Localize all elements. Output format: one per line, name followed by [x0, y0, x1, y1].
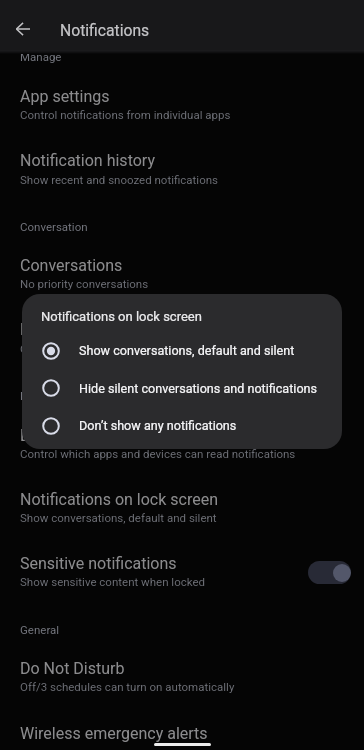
staticText: Wireless emergency alerts	[20, 724, 208, 743]
staticText: Notifications	[60, 21, 150, 39]
staticText: General	[20, 623, 60, 636]
staticText: Notifications on lock screen	[20, 490, 219, 509]
button[interactable]	[0, 474, 364, 526]
button[interactable]: Navigate back	[4, 10, 42, 48]
staticText: Show recent and snoozed notifications	[20, 173, 219, 186]
button[interactable]	[22, 408, 342, 444]
button[interactable]: Sensitive notifications toggle	[308, 561, 351, 584]
button[interactable]	[0, 240, 364, 292]
staticText: App settings	[20, 87, 110, 106]
staticText: Off/3 schedules can turn on automaticall…	[20, 680, 235, 693]
staticText: No priority conversations	[20, 277, 149, 290]
staticText: Hide silent conversations and notificati…	[79, 381, 318, 396]
staticText: Sensitive notifications	[20, 554, 177, 573]
staticText: Show sensitive content when locked	[20, 575, 206, 588]
staticText: Notifications on lock screen	[41, 309, 202, 324]
button[interactable]	[0, 708, 364, 750]
button[interactable]	[0, 410, 364, 462]
staticText: Manage	[20, 50, 62, 63]
button[interactable]	[0, 71, 364, 123]
staticText: On	[20, 342, 35, 355]
staticText: Bubbles	[20, 320, 78, 339]
staticText: Do Not Disturb	[20, 659, 125, 678]
button[interactable]	[22, 370, 342, 406]
staticText: Don’t show any notifications	[79, 418, 237, 433]
staticText: Show conversations, default and silent	[20, 511, 217, 524]
button[interactable]	[0, 538, 364, 590]
button[interactable]	[0, 135, 364, 187]
button[interactable]	[0, 643, 364, 695]
staticText: Privacy	[20, 389, 58, 402]
button[interactable]	[22, 333, 342, 369]
staticText: Control notifications from individual ap…	[20, 108, 231, 121]
staticText: Conversations	[20, 256, 123, 275]
button[interactable]	[0, 304, 364, 356]
staticText: Device & app notifications	[20, 426, 205, 445]
staticText: Show conversations, default and silent	[79, 343, 295, 358]
staticText: Control which apps and devices can read …	[20, 447, 296, 460]
staticText: Conversation	[20, 220, 88, 233]
staticText: Notification history	[20, 151, 155, 170]
